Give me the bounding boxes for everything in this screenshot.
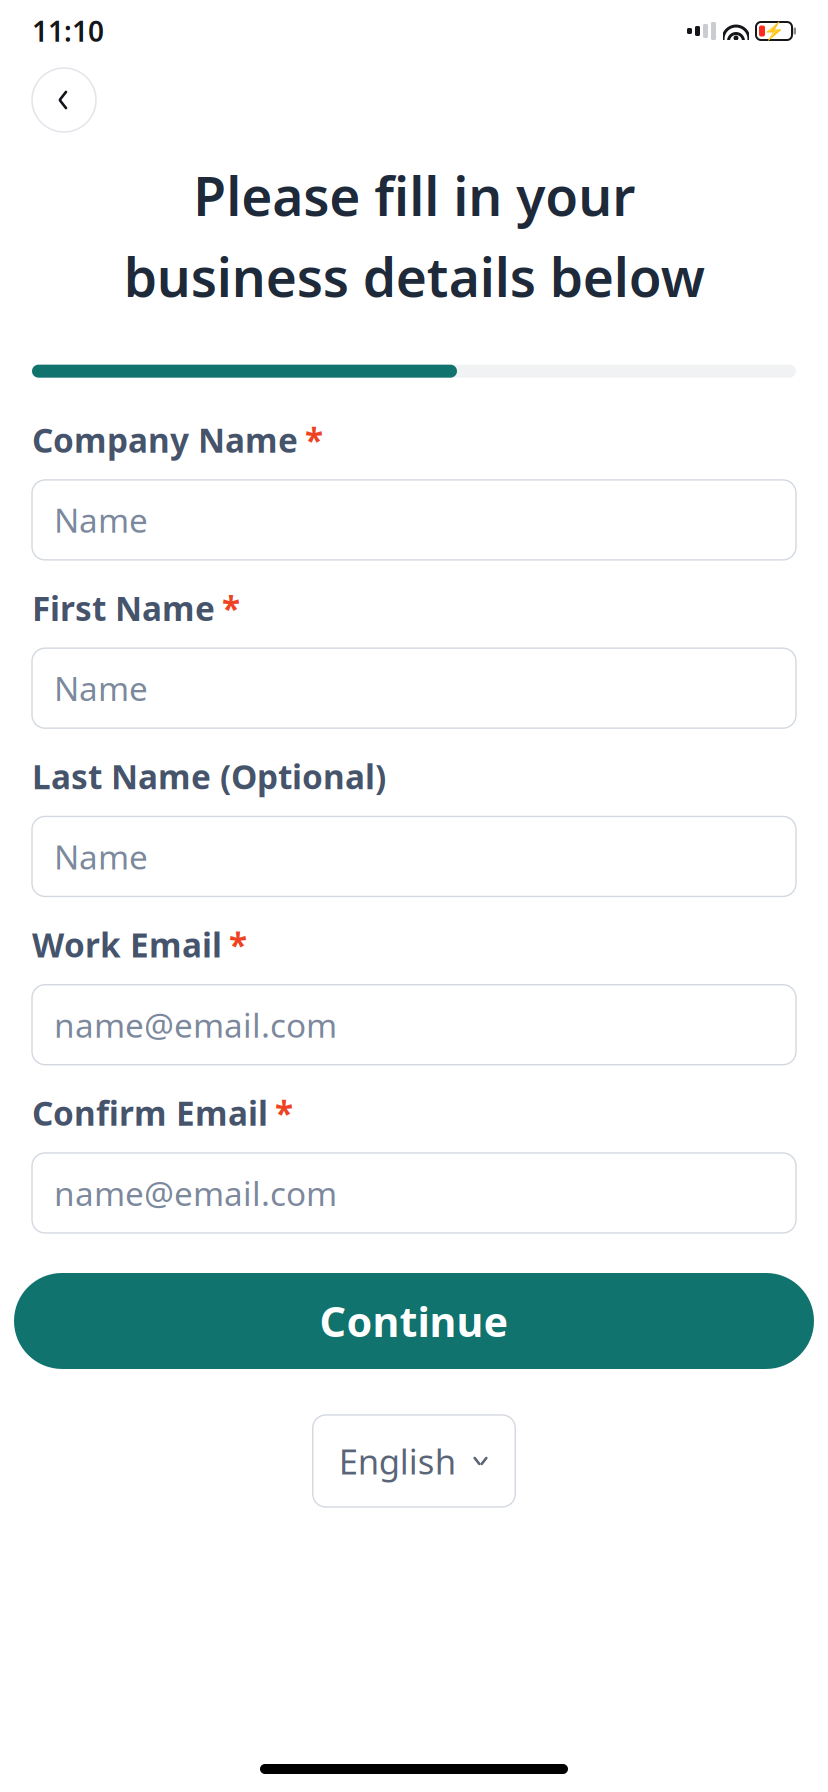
button[interactable]: name@email.com [32,1153,796,1233]
button[interactable]: Name [32,480,796,560]
staticText: * [275,1091,293,1135]
staticText: Name [54,666,148,710]
staticText: name@email.com [54,1171,337,1215]
staticText: * [222,586,240,630]
button[interactable]: name@email.com [32,985,796,1065]
button[interactable]: Back [32,68,96,132]
staticText: Work Email [32,922,222,967]
staticText: Name [54,834,148,879]
button[interactable]: Continue [14,1273,814,1369]
button[interactable]: English [313,1415,515,1507]
staticText: Name [54,498,148,542]
staticText: Last Name (Optional) [32,754,386,798]
staticText: Confirm Email [32,1091,268,1135]
staticText: Continue [319,1293,508,1348]
button[interactable]: Name [32,648,796,728]
staticText: ⚡ [763,21,785,41]
staticText: First Name [32,586,215,630]
staticText: Please fill in your business details bel… [123,160,704,312]
staticText: * [305,418,323,462]
staticText: Company Name [32,418,298,462]
staticText: English [339,1438,456,1484]
staticText: * [229,922,247,967]
staticText: name@email.com [54,1003,337,1047]
button[interactable]: Name [32,816,796,896]
staticText: 11:10 [32,12,104,50]
